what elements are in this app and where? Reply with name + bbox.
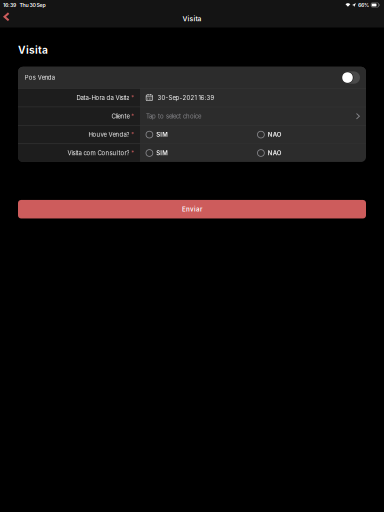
staticText: Tap to select choice [146, 113, 201, 120]
button[interactable]: Back [0, 12, 15, 26]
button[interactable]: NAO [257, 144, 366, 162]
staticText: SIM [156, 131, 168, 138]
staticText: NAO [268, 149, 282, 157]
staticText: Enviar [182, 205, 202, 213]
button[interactable]: Tap to select choice [140, 107, 366, 125]
staticText: 66% [358, 2, 369, 8]
staticText: Visita [18, 44, 48, 56]
staticText: 16:39 [3, 2, 16, 8]
staticText: * [131, 149, 134, 157]
staticText: Thu 30 Sep [19, 2, 45, 8]
staticText: * [131, 131, 134, 138]
staticText: NAO [268, 131, 282, 138]
staticText: Visita [182, 15, 201, 23]
button[interactable]: Pos Venda toggle [342, 71, 360, 84]
staticText: * [131, 94, 134, 101]
staticText: Visita com Consultor? [67, 149, 129, 157]
button[interactable]: 30-Sep-2021 16:39 [140, 89, 366, 107]
staticText: 30-Sep-2021 16:39 [158, 94, 215, 101]
button[interactable]: Enviar [18, 200, 366, 218]
button[interactable]: SIM [140, 144, 257, 162]
staticText: Cliente [111, 113, 129, 120]
staticText: Pos Venda [25, 74, 55, 81]
button[interactable]: NAO [257, 126, 366, 144]
staticText: * [131, 113, 134, 120]
staticText: SIM [156, 149, 168, 157]
staticText: Houve Venda? [88, 131, 129, 138]
staticText: Data-Hora da Visita [76, 94, 129, 101]
button[interactable]: SIM [140, 126, 257, 144]
